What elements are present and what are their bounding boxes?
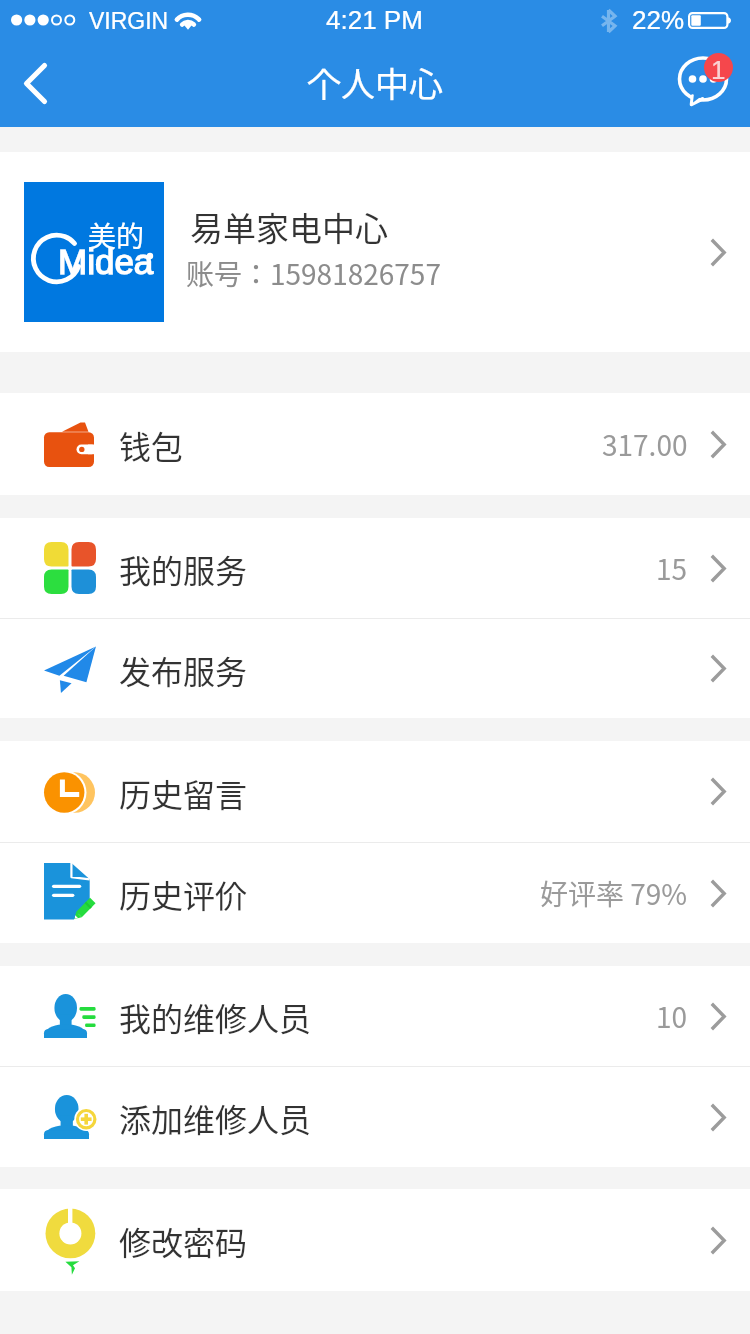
- staticText: 我的维修人员: [119, 994, 312, 1040]
- button[interactable]: 历史评价: [0, 843, 750, 943]
- staticText: 10: [656, 996, 688, 1037]
- button[interactable]: 我的服务: [0, 518, 750, 618]
- staticText: VIRGIN: [89, 8, 169, 34]
- staticText: 好评率 79%: [540, 873, 688, 914]
- button[interactable]: Back: [0, 40, 74, 127]
- staticText: 发布服务: [119, 647, 248, 693]
- staticText: 历史评价: [119, 871, 248, 917]
- staticText: 4:21 PM: [326, 5, 423, 34]
- staticText: 1: [711, 55, 726, 84]
- staticText: 账号：15981826757: [186, 253, 441, 294]
- staticText: 15: [656, 548, 688, 589]
- button[interactable]: Messages: [656, 40, 750, 127]
- staticText: 易单家电中心: [190, 203, 388, 251]
- button[interactable]: 发布服务: [0, 619, 750, 718]
- button[interactable]: 修改密码: [0, 1189, 750, 1291]
- button[interactable]: 美的: [0, 152, 750, 352]
- button[interactable]: 添加维修人员: [0, 1067, 750, 1167]
- staticText: 个人中心: [307, 58, 443, 107]
- staticText: Midea: [58, 242, 154, 281]
- button[interactable]: 钱包: [0, 393, 750, 495]
- staticText: 22%: [632, 5, 685, 34]
- staticText: 修改密码: [119, 1218, 248, 1264]
- staticText: 添加维修人员: [119, 1095, 312, 1141]
- staticText: 钱包: [119, 422, 184, 468]
- button[interactable]: 我的维修人员: [0, 966, 750, 1066]
- staticText: 历史留言: [119, 770, 248, 816]
- staticText: 美的: [88, 215, 145, 256]
- staticText: 317.00: [602, 424, 688, 465]
- button[interactable]: 历史留言: [0, 741, 750, 842]
- staticText: 我的服务: [119, 546, 248, 592]
